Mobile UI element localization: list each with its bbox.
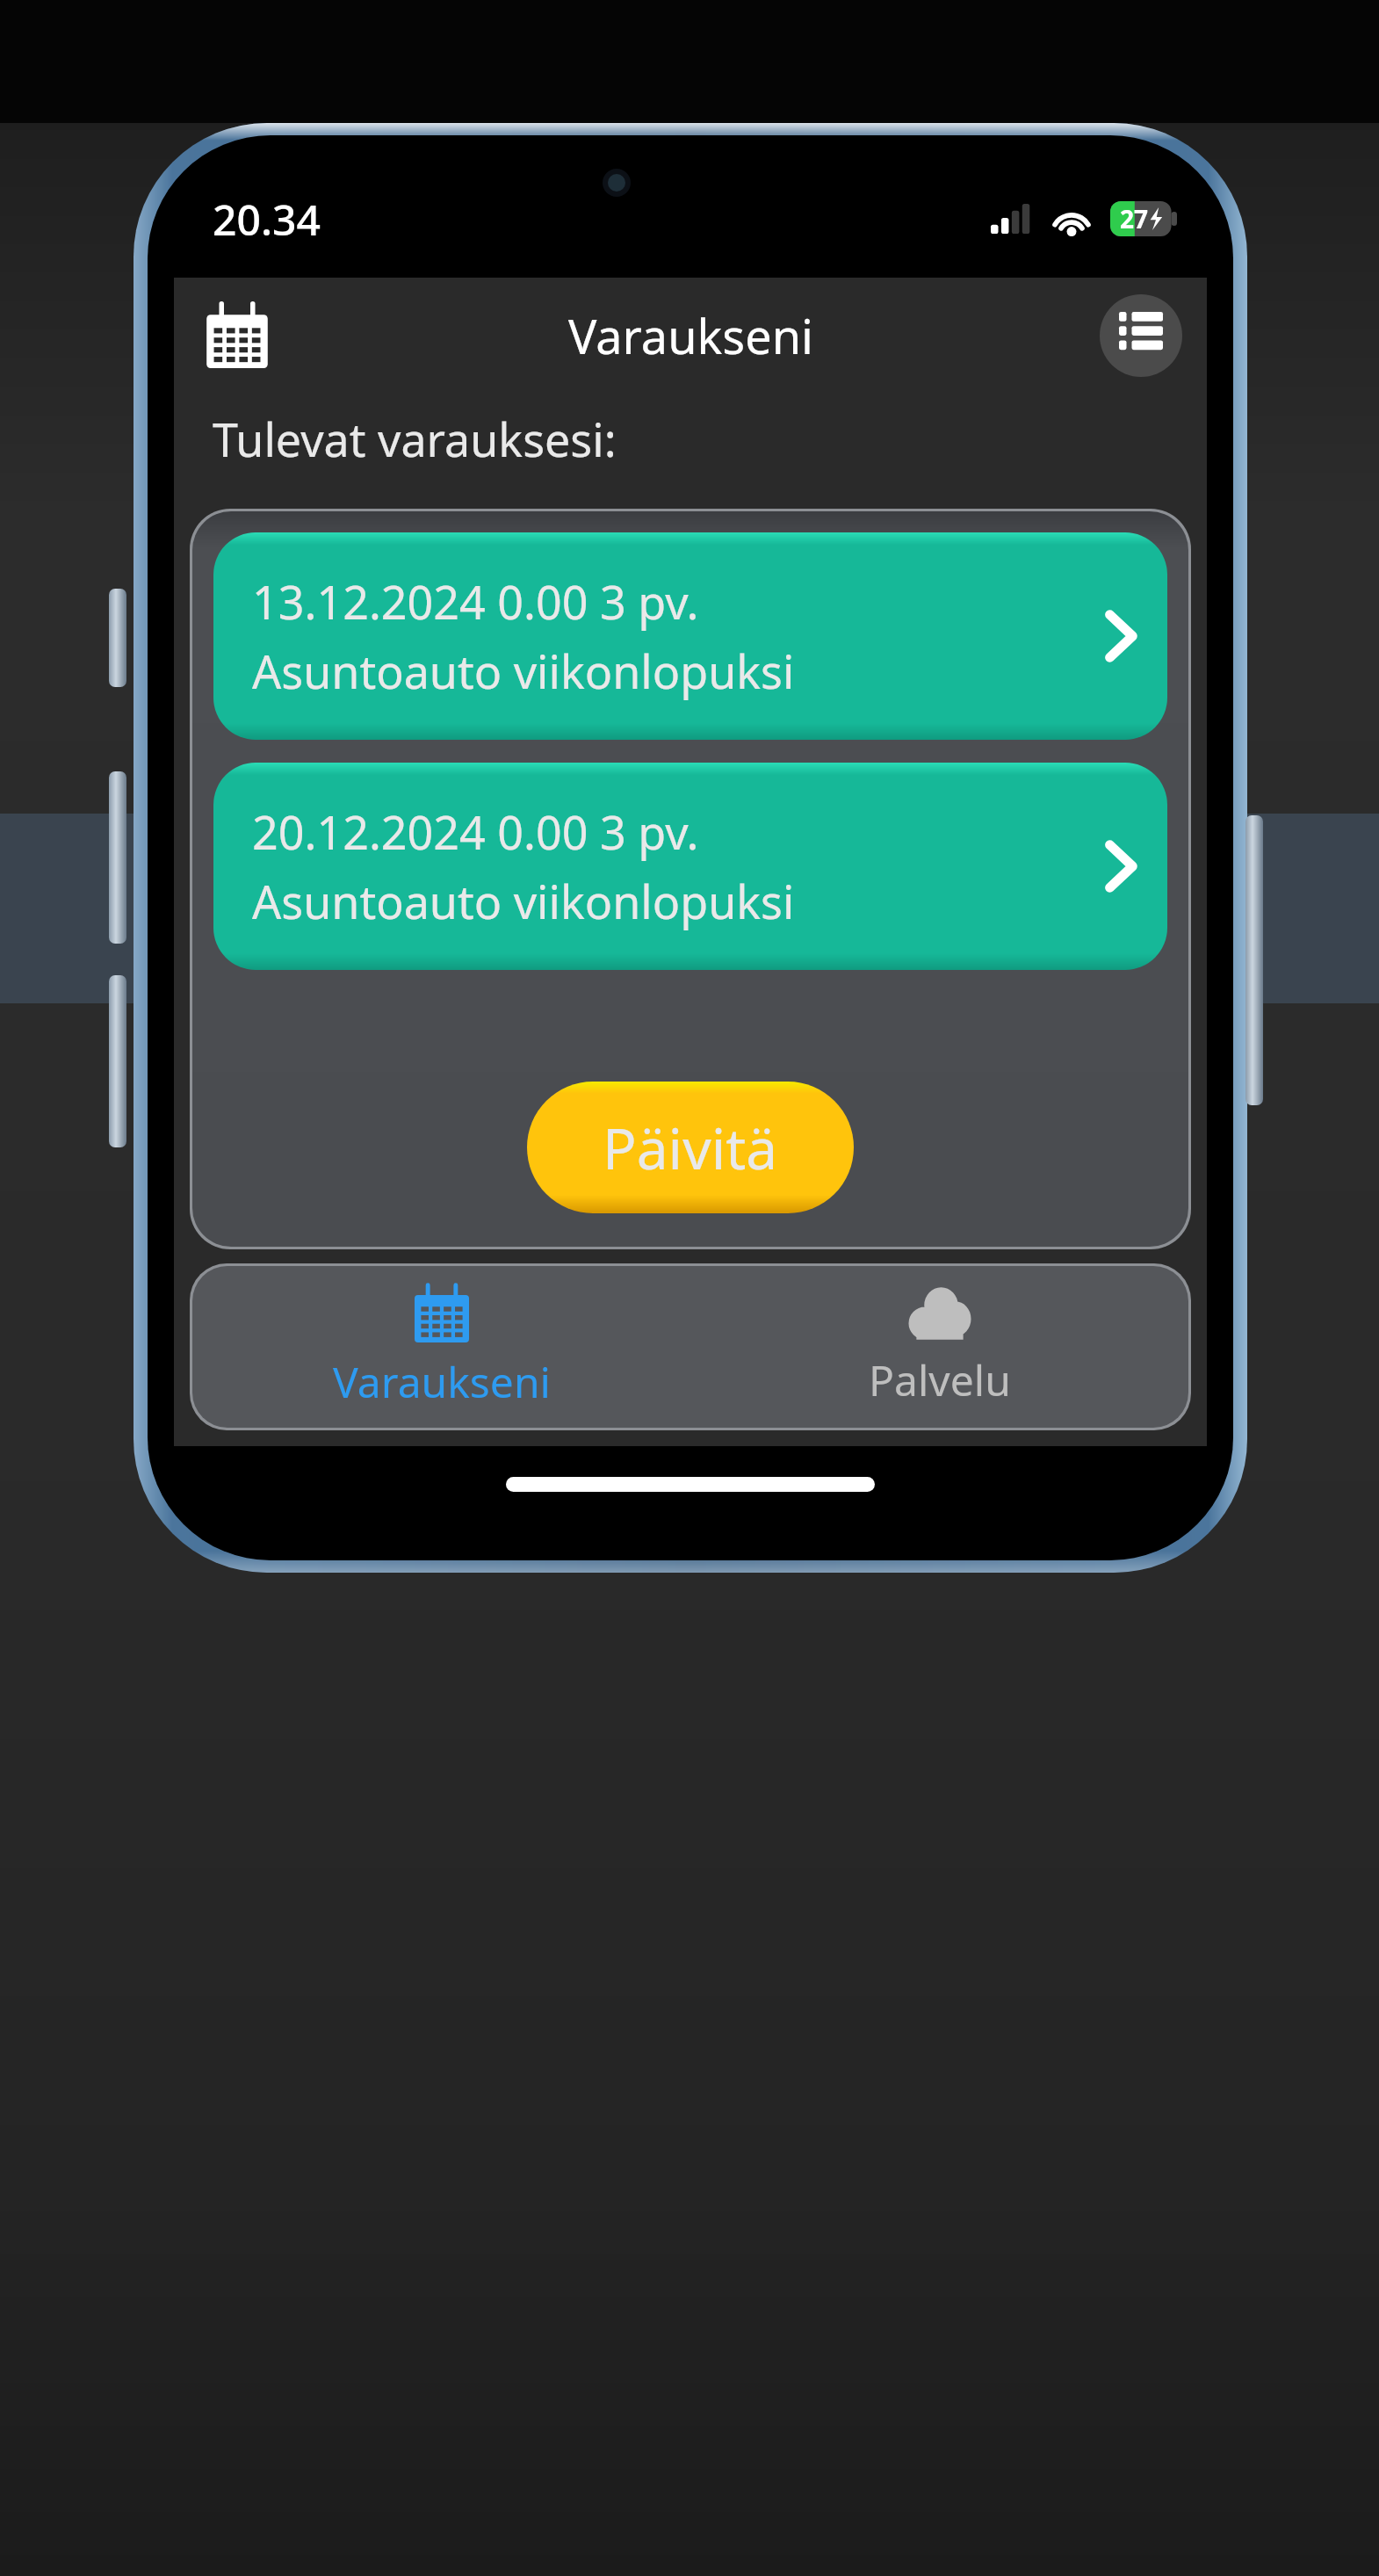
staticText: Asuntoauto viikonlopuksi xyxy=(252,870,795,932)
button[interactable]: 20.12.2024 0.00 3 pv. xyxy=(213,763,1167,970)
staticText: Varaukseni xyxy=(568,303,813,368)
button[interactable]: Palvelu xyxy=(690,1266,1188,1428)
staticText: Tulevat varauksesi: xyxy=(213,408,617,470)
button[interactable]: Valikko xyxy=(1100,294,1182,377)
button[interactable]: Varaukseni xyxy=(192,1266,690,1428)
staticText: Palvelu xyxy=(869,1351,1011,1408)
staticText: 13.12.2024 0.00 3 pv. xyxy=(252,570,699,633)
staticText: Varaukseni xyxy=(333,1353,551,1410)
button[interactable]: 13.12.2024 0.00 3 pv. xyxy=(213,532,1167,740)
button[interactable]: Päivitä xyxy=(527,1082,854,1213)
staticText: 27 xyxy=(1120,202,1149,235)
staticText: Päivitä xyxy=(603,1110,778,1186)
staticText: 20.12.2024 0.00 3 pv. xyxy=(252,800,699,863)
staticText: Asuntoauto viikonlopuksi xyxy=(252,640,795,702)
button[interactable]: Kalenteri xyxy=(199,297,276,374)
staticText: 20.34 xyxy=(213,191,321,248)
